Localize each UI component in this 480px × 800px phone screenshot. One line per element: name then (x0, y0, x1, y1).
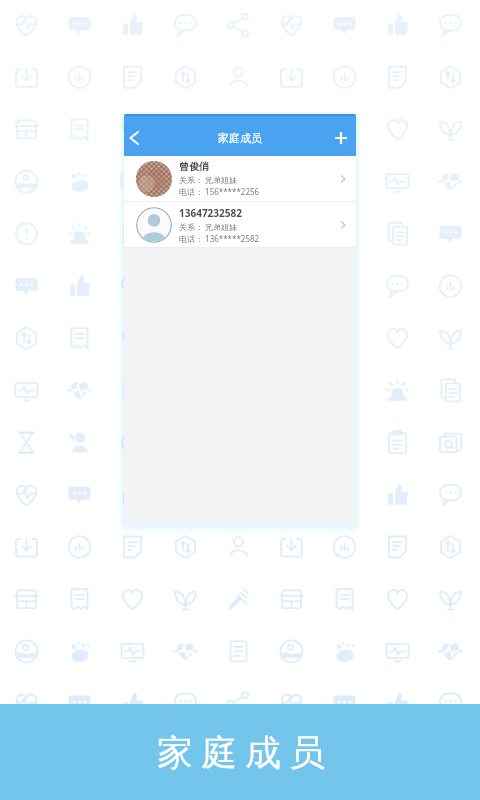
staticText: 关系： 兄弟姐妹 (179, 174, 238, 185)
button[interactable]: 曾俊俏 (124, 156, 356, 201)
staticText: 关系： 兄弟姐妹 (179, 221, 238, 232)
staticText: 家庭成员 (153, 730, 329, 775)
staticText: 曾俊俏 (179, 160, 209, 173)
button[interactable]: 13647232582 (124, 202, 356, 247)
staticText: 13647232582 (179, 206, 242, 220)
staticText: 电话： 156*****2256 (179, 186, 260, 197)
staticText: 家庭成员 (218, 131, 262, 145)
button[interactable]: Back (124, 120, 143, 156)
button[interactable]: Add member (326, 120, 356, 156)
staticText: 电话： 136*****2582 (179, 233, 260, 244)
